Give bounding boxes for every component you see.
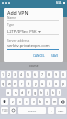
button[interactable]: SAVE: [49, 53, 61, 59]
staticText: 2: [8, 72, 11, 77]
button[interactable]: o: [54, 80, 59, 87]
staticText: l: [59, 90, 60, 95]
staticText: o: [55, 81, 58, 86]
staticText: m: [53, 99, 57, 104]
button[interactable]: .: [48, 107, 54, 114]
button[interactable]: h: [39, 89, 43, 96]
button[interactable]: g: [33, 89, 37, 96]
button[interactable]: y: [33, 80, 38, 87]
staticText: .: [51, 108, 52, 113]
staticText: Next: [58, 109, 64, 112]
staticText: 3: [14, 72, 17, 77]
staticText: Name: [7, 16, 16, 20]
staticText: v: [33, 99, 35, 104]
button[interactable]: w: [7, 80, 11, 87]
staticText: q: [2, 81, 5, 86]
staticText: w: [8, 81, 11, 86]
button[interactable]: p: [61, 80, 66, 87]
button[interactable]: s: [13, 89, 18, 96]
button[interactable]: u: [40, 80, 45, 87]
button[interactable]: 8: [47, 71, 52, 78]
button[interactable]: z: [10, 98, 15, 105]
button[interactable]: f: [27, 89, 31, 96]
staticText: i: [49, 81, 50, 86]
button[interactable]: CANCEL: [31, 53, 47, 59]
button[interactable]: Emoji: [10, 107, 16, 114]
staticText: Type: [7, 23, 15, 27]
staticText: p: [62, 81, 65, 86]
staticText: t: [28, 81, 30, 86]
button[interactable]: Backspace: [59, 98, 66, 105]
staticText: r: [21, 81, 23, 86]
button[interactable]: 4: [19, 71, 24, 78]
staticText: u: [41, 81, 44, 86]
staticText: course: [29, 64, 39, 68]
staticText: e: [14, 81, 17, 86]
staticText: L2TP/IPSec PSK: [7, 29, 37, 35]
staticText: j: [47, 90, 48, 95]
button[interactable]: l: [57, 89, 61, 96]
staticText: z: [12, 99, 14, 104]
button[interactable]: v: [31, 98, 36, 105]
button[interactable]: b: [38, 98, 43, 105]
button[interactable]: 1: [1, 71, 5, 78]
button[interactable]: 9: [54, 71, 59, 78]
button[interactable]: ?123: [1, 107, 8, 114]
staticText: g: [34, 90, 37, 95]
staticText: serktv.privatevpn.com: [7, 43, 50, 49]
staticText: CANCEL: [33, 54, 45, 58]
button[interactable]: n: [45, 98, 50, 105]
button[interactable]: x: [17, 98, 22, 105]
staticText: f: [28, 90, 30, 95]
staticText: x: [19, 99, 21, 104]
staticText: 8:34: [56, 1, 62, 5]
button[interactable]: r: [19, 80, 24, 87]
button[interactable]: 6: [33, 71, 38, 78]
button[interactable]: 2: [7, 71, 11, 78]
button[interactable]: 3: [13, 71, 17, 78]
staticText: Add VPN: [7, 9, 29, 16]
staticText: k: [52, 90, 54, 95]
button[interactable]: d: [20, 89, 25, 96]
button[interactable]: English: [18, 107, 46, 114]
staticText: 7: [41, 72, 44, 77]
staticText: h: [40, 90, 43, 95]
staticText: 8: [48, 72, 51, 77]
staticText: b: [39, 99, 42, 104]
button[interactable]: q: [1, 80, 5, 87]
staticText: English: [28, 109, 37, 112]
staticText: 6: [34, 72, 37, 77]
staticText: 9: [55, 72, 58, 77]
staticText: a: [7, 90, 10, 95]
staticText: 0: [62, 72, 65, 77]
staticText: SAVE: [51, 54, 59, 58]
button[interactable]: e: [13, 80, 17, 87]
button[interactable]: 7: [40, 71, 45, 78]
staticText: ?123: [2, 109, 8, 113]
button[interactable]: k: [51, 89, 55, 96]
staticText: d: [21, 90, 24, 95]
staticText: 5: [27, 72, 30, 77]
button[interactable]: 0: [61, 71, 66, 78]
staticText: y: [35, 81, 37, 86]
button[interactable]: a: [6, 89, 11, 96]
button[interactable]: t: [26, 80, 31, 87]
button[interactable]: j: [45, 89, 49, 96]
staticText: s: [15, 90, 17, 95]
staticText: Server address: [7, 39, 30, 43]
staticText: 4: [20, 72, 23, 77]
button[interactable]: m: [52, 98, 57, 105]
button[interactable]: 5: [26, 71, 31, 78]
staticText: n: [46, 99, 49, 104]
staticText: c: [26, 99, 28, 104]
button[interactable]: i: [47, 80, 52, 87]
button[interactable]: Shift: [1, 98, 8, 105]
button[interactable]: c: [24, 98, 29, 105]
button[interactable]: Next: [56, 107, 66, 114]
staticText: 1: [2, 72, 5, 77]
